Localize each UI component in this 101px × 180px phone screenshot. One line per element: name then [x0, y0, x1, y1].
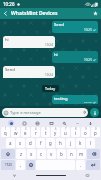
staticText: 5	[45, 127, 47, 131]
button[interactable]: 9	[81, 127, 90, 137]
staticText: k	[79, 140, 82, 146]
staticText: WhatsMint Devices	[11, 10, 58, 17]
button[interactable]: Assistant	[8, 120, 14, 126]
staticText: j	[70, 140, 72, 146]
staticText: 10:26	[3, 1, 15, 7]
button[interactable]: x	[27, 149, 36, 159]
staticText: ,	[20, 162, 22, 168]
button[interactable]: Enter	[86, 160, 100, 170]
button[interactable]: ,	[16, 160, 25, 170]
staticText: b	[60, 151, 63, 157]
staticText: 10:25	[84, 28, 92, 32]
button[interactable]: c	[37, 149, 46, 159]
button[interactable]: hi	[3, 36, 55, 48]
button[interactable]: Switch keyboard	[73, 171, 101, 180]
staticText: i	[75, 130, 77, 136]
staticText: y	[54, 130, 57, 136]
button[interactable]: hi	[52, 51, 98, 63]
button[interactable]: Hide keyboard	[0, 171, 28, 180]
staticText: ?123	[5, 163, 12, 167]
staticText: h	[59, 140, 62, 146]
button[interactable]: 7	[61, 127, 70, 137]
staticText: testing	[54, 96, 68, 102]
button[interactable]: Symbols	[1, 160, 15, 170]
staticText: hi	[54, 52, 58, 58]
button[interactable]: Send	[90, 108, 99, 117]
button[interactable]: Favourite	[90, 8, 101, 19]
staticText: u	[64, 130, 67, 136]
staticText: v	[50, 151, 53, 157]
button[interactable]: z	[16, 149, 26, 159]
button[interactable]: Shift	[1, 149, 15, 159]
staticText: q	[4, 130, 7, 136]
button[interactable]: Home	[28, 171, 73, 180]
staticText: 1	[5, 127, 7, 131]
staticText: a	[9, 140, 12, 146]
button[interactable]: v	[47, 149, 56, 159]
button[interactable]: testing	[52, 95, 98, 104]
button[interactable]: .	[76, 160, 85, 170]
button[interactable]: Tool 4	[74, 120, 80, 126]
button[interactable]: a	[6, 138, 15, 148]
button[interactable]: 8	[71, 127, 80, 137]
staticText: 6	[55, 127, 57, 131]
button[interactable]: WhatsMint Devices	[11, 8, 90, 19]
button[interactable]: m	[77, 149, 86, 159]
staticText: Today	[45, 86, 56, 91]
staticText: hi	[5, 37, 9, 43]
button[interactable]: Backspace	[87, 149, 100, 159]
button[interactable]: 4	[31, 127, 40, 137]
button[interactable]: g	[46, 138, 55, 148]
staticText: m	[79, 151, 84, 157]
staticText: 10:24	[45, 73, 53, 77]
staticText: 3	[25, 127, 27, 131]
button[interactable]: h	[56, 138, 65, 148]
button[interactable]: Send	[3, 66, 55, 78]
button[interactable]: d	[26, 138, 35, 148]
button[interactable]: 3	[21, 127, 30, 137]
staticText: t	[45, 130, 47, 136]
button[interactable]: Tool 3	[61, 120, 67, 126]
button[interactable]: 6	[51, 127, 60, 137]
staticText: l	[90, 140, 92, 146]
staticText: 10:25	[84, 102, 92, 103]
staticText: 10:24	[45, 43, 53, 47]
button[interactable]: 5	[41, 127, 50, 137]
button[interactable]: Type a message	[2, 108, 88, 117]
button[interactable]: k	[76, 138, 85, 148]
staticText: x	[30, 151, 33, 157]
staticText: p	[94, 130, 97, 136]
staticText: n	[70, 151, 73, 157]
staticText: 10:25	[84, 58, 92, 62]
staticText: o	[84, 130, 87, 136]
staticText: 7	[65, 127, 67, 131]
staticText: c	[40, 151, 43, 157]
button[interactable]: Back	[0, 8, 11, 19]
staticText: .	[80, 162, 82, 168]
staticText: z	[20, 151, 23, 157]
button[interactable]: n	[67, 149, 76, 159]
button[interactable]: 1	[1, 127, 10, 137]
staticText: s	[19, 140, 22, 146]
staticText: 0	[95, 127, 97, 131]
button[interactable]: Tool 1	[34, 120, 40, 126]
button[interactable]: 2	[11, 127, 20, 137]
button[interactable]: j	[66, 138, 75, 148]
button[interactable]: Tool 2	[48, 120, 54, 126]
staticText: Send	[54, 22, 64, 28]
button[interactable]: l	[86, 138, 95, 148]
button[interactable]: f	[36, 138, 45, 148]
button[interactable]: Send	[52, 21, 98, 33]
button[interactable]: 0	[91, 127, 100, 137]
button[interactable]: Emoji	[26, 160, 35, 170]
button[interactable]: s	[16, 138, 25, 148]
staticText: f	[40, 140, 42, 146]
button[interactable]: Tool 0	[21, 120, 27, 126]
staticText: Send	[5, 67, 15, 73]
staticText: 2	[15, 127, 17, 131]
button[interactable]: b	[57, 149, 66, 159]
staticText: 4	[35, 127, 37, 131]
button[interactable]: Voice input	[87, 120, 93, 126]
staticText: Type a message	[10, 110, 41, 116]
